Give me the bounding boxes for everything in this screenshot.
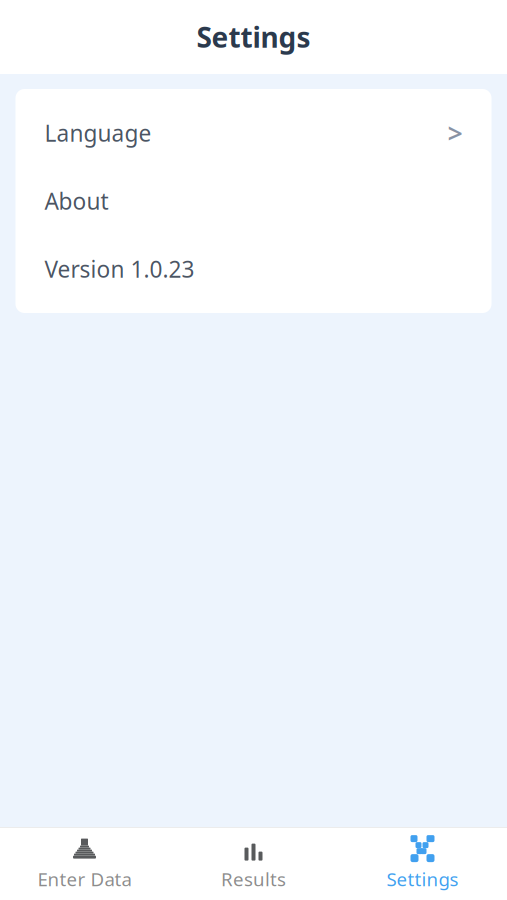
button[interactable]: Language xyxy=(15,99,491,167)
button[interactable]: Enter Data xyxy=(0,833,169,894)
staticText: > xyxy=(447,115,462,151)
staticText: Settings xyxy=(386,867,458,891)
staticText: Enter Data xyxy=(37,867,131,891)
staticText: Language xyxy=(44,118,151,148)
staticText: Settings xyxy=(196,18,310,56)
staticText: Results xyxy=(221,867,286,891)
button[interactable]: About xyxy=(15,167,491,235)
button[interactable]: Results xyxy=(169,833,338,894)
button[interactable]: Settings xyxy=(338,833,507,894)
staticText: About xyxy=(44,186,108,216)
staticText: Version 1.0.23 xyxy=(44,254,194,284)
